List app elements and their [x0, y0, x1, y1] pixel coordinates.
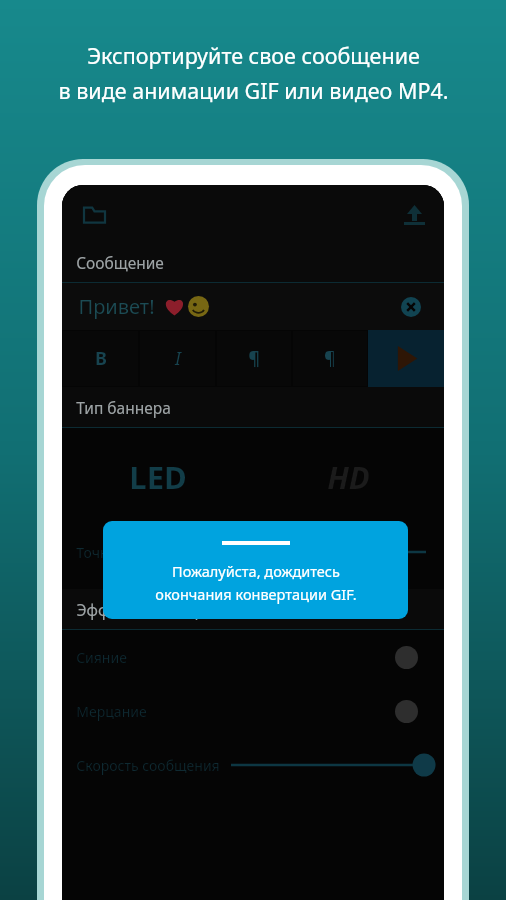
- button[interactable]: Мерцание: [62, 684, 444, 738]
- button[interactable]: Точки на экране: [62, 525, 444, 579]
- button[interactable]: Пожалуйста, дождитесь: [103, 521, 408, 619]
- button[interactable]: Clear message: [395, 291, 427, 323]
- staticText: Сообщение: [76, 252, 164, 273]
- button[interactable]: Привет!: [62, 283, 444, 330]
- staticText: Пожалуйста, дождитесь: [172, 561, 340, 581]
- staticText: Скорость сообщения: [76, 756, 220, 775]
- staticText: Точки на экране: [76, 543, 187, 562]
- staticText: Привет!: [78, 293, 155, 320]
- staticText: Сияние: [76, 648, 127, 667]
- staticText: Экспортируйте свое сообщение: [87, 41, 420, 70]
- button[interactable]: HD: [253, 428, 444, 525]
- staticText: Эффекты баннера: [76, 599, 213, 620]
- button[interactable]: Open folder: [74, 194, 114, 234]
- button[interactable]: ¶: [217, 331, 291, 386]
- button[interactable]: I: [140, 331, 215, 386]
- staticText: I: [175, 346, 181, 371]
- staticText: B: [95, 346, 107, 371]
- button[interactable]: ¶: [293, 331, 367, 386]
- staticText: в виде анимации GIF или видео MP4.: [58, 76, 449, 105]
- button[interactable]: LED: [62, 428, 253, 525]
- staticText: LED: [129, 456, 187, 498]
- button[interactable]: Export banner: [394, 194, 434, 234]
- staticText: HD: [327, 456, 370, 498]
- staticText: окончания конвертации GIF.: [155, 584, 357, 604]
- staticText: Тип баннера: [76, 397, 171, 418]
- button[interactable]: Play preview: [368, 330, 444, 387]
- button[interactable]: B: [63, 331, 138, 386]
- staticText: ¶: [248, 346, 260, 371]
- staticText: ¶: [324, 346, 336, 371]
- staticText: Мерцание: [76, 702, 147, 721]
- button[interactable]: Сияние: [62, 630, 444, 684]
- button[interactable]: Скорость сообщения: [62, 738, 444, 792]
